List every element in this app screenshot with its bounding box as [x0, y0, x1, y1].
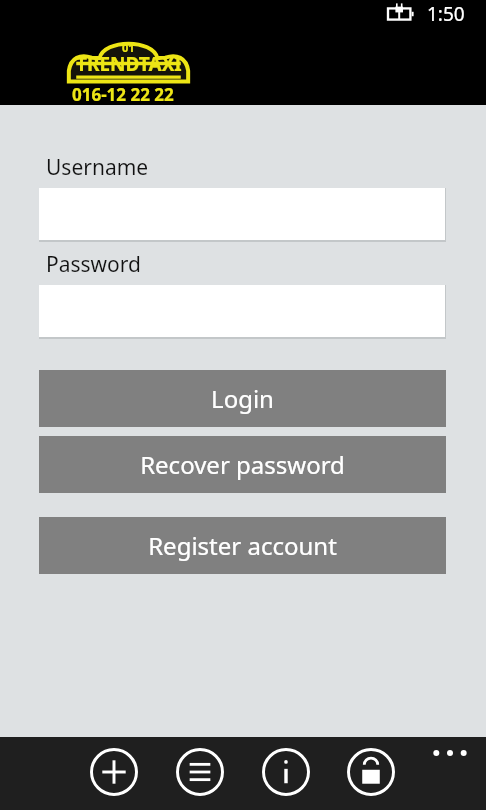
button[interactable]: More options [428, 739, 472, 767]
staticText: Password [46, 250, 141, 279]
button[interactable]: Register account [39, 517, 446, 574]
staticText: 01 [122, 40, 135, 55]
staticText: 016-12 22 22 [72, 83, 174, 105]
button[interactable]: Recover password [39, 436, 446, 493]
staticText: Login [211, 382, 274, 415]
staticText: 1:50 [427, 1, 465, 27]
staticText: Username [46, 153, 149, 182]
staticText: TRENDTAXI [76, 51, 182, 77]
button[interactable]: Add [87, 745, 141, 799]
button[interactable]: Information [259, 745, 313, 799]
button[interactable]: Lock [344, 745, 398, 799]
staticText: Recover password [140, 448, 345, 481]
button[interactable]: Login [39, 370, 446, 427]
staticText: Register account [148, 529, 337, 562]
button[interactable]: Menu [173, 745, 227, 799]
